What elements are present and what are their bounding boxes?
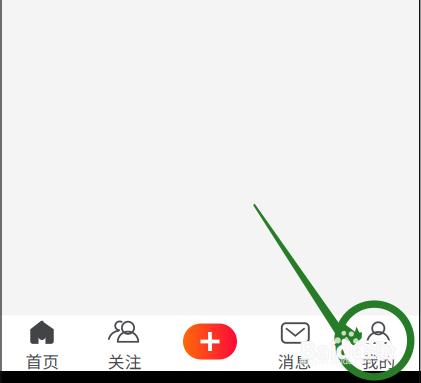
staticText: 关注	[108, 349, 142, 373]
staticText: Baidu	[300, 335, 366, 364]
button[interactable]: 发布	[168, 315, 252, 371]
staticText: Baidu	[299, 335, 365, 364]
staticText: 我的	[361, 349, 395, 373]
staticText: 消息	[278, 349, 312, 373]
button[interactable]: 消息	[253, 315, 337, 371]
staticText: 经验	[357, 338, 397, 363]
staticText: Baidu	[300, 335, 366, 364]
staticText: 首页	[25, 349, 59, 373]
staticText: 经验	[356, 337, 396, 363]
staticText: Baidu	[300, 336, 366, 365]
staticText: 经验	[356, 338, 396, 363]
button[interactable]: 我的	[336, 315, 420, 371]
button[interactable]: 关注	[85, 315, 169, 371]
staticText: jingyan.baidu.com	[299, 356, 372, 366]
staticText: jingyan.baidu.com	[300, 356, 373, 366]
button[interactable]: 首页	[0, 315, 84, 371]
staticText: Baidu	[301, 335, 367, 364]
staticText: 经验	[356, 339, 396, 364]
staticText: 经验	[355, 338, 395, 363]
